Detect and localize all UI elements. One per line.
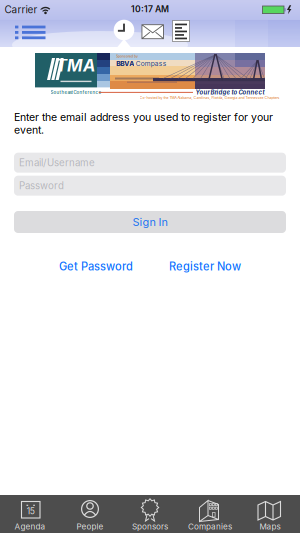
button[interactable]: Sign In: [14, 211, 286, 233]
button[interactable]: Recent: [111, 19, 137, 41]
staticText: 10:17 AM: [131, 4, 169, 14]
staticText: Enter the email address you used to regi…: [14, 111, 273, 136]
staticText: Get Password: [59, 260, 133, 273]
staticText: Carrier: [4, 3, 37, 16]
button[interactable]: Maps: [240, 495, 300, 533]
button[interactable]: Get Password: [59, 260, 133, 273]
button[interactable]: Email/Username: [14, 153, 286, 173]
button[interactable]: Sponsors: [120, 495, 180, 533]
staticText: Password: [19, 180, 64, 192]
staticText: Companies: [188, 522, 232, 531]
staticText: BBVA: [116, 59, 134, 68]
staticText: TMA: [56, 55, 95, 76]
button[interactable]: News: [172, 20, 190, 42]
button[interactable]: Sponsor banner: [35, 53, 265, 102]
staticText: Your Bridge to Connect: [195, 89, 264, 96]
staticText: People: [76, 522, 103, 531]
button[interactable]: Menu: [13, 23, 47, 41]
button[interactable]: People: [60, 495, 120, 533]
staticText: Compass: [136, 59, 167, 68]
button[interactable]: Password: [14, 176, 286, 196]
staticText: Co-hosted by the TMA Alabama, Carolinas,…: [139, 96, 279, 100]
staticText: 15: [27, 506, 35, 516]
staticText: Agenda: [14, 522, 45, 531]
button[interactable]: Messages: [141, 24, 164, 39]
staticText: Sign In: [132, 215, 167, 229]
staticText: Sponsors: [132, 522, 168, 531]
button[interactable]: Register Now: [169, 260, 241, 273]
button[interactable]: 15: [0, 495, 60, 533]
staticText: Sponsored by: [116, 54, 138, 58]
staticText: Register Now: [169, 260, 241, 273]
staticText: Maps: [259, 522, 280, 531]
staticText: Southeast Conference: [50, 90, 101, 95]
staticText: Email/Username: [19, 157, 95, 169]
button[interactable]: Companies: [180, 495, 240, 533]
